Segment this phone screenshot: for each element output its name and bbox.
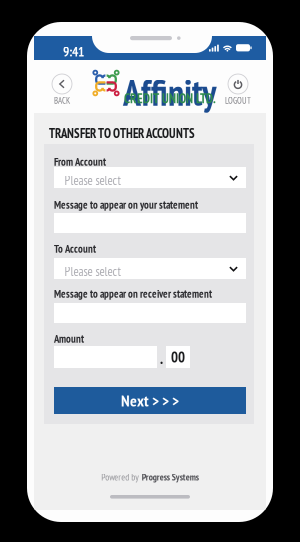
staticText: Progress Systems — [142, 471, 199, 483]
staticText: LOGOUT — [225, 95, 251, 105]
staticText: Please select — [64, 172, 120, 184]
staticText: Next > > > — [121, 390, 179, 411]
staticText: BACK — [54, 95, 70, 105]
staticText: From Account — [54, 155, 106, 166]
button[interactable]: Please select — [54, 167, 246, 188]
staticText: . — [160, 349, 163, 368]
staticText: Message to appear on your statement — [54, 198, 198, 209]
staticText: Message to appear on receiver statement — [54, 287, 212, 298]
staticText: To Account — [54, 242, 96, 253]
staticText: CREDIT UNION LTD. — [124, 90, 216, 100]
button[interactable]: Log out — [218, 68, 258, 106]
button[interactable]: Back — [42, 68, 82, 106]
staticText: Please select — [64, 263, 120, 275]
button[interactable]: Please select — [54, 258, 246, 279]
button[interactable]: Next > > > — [54, 387, 246, 414]
staticText: Affinity — [123, 69, 216, 93]
staticText: Powered by — [101, 471, 139, 483]
staticText: TRANSFER TO OTHER ACCOUNTS — [49, 125, 195, 137]
staticText: 9:41 — [63, 43, 84, 55]
staticText: Amount — [54, 332, 84, 343]
staticText: 00 — [171, 347, 185, 366]
